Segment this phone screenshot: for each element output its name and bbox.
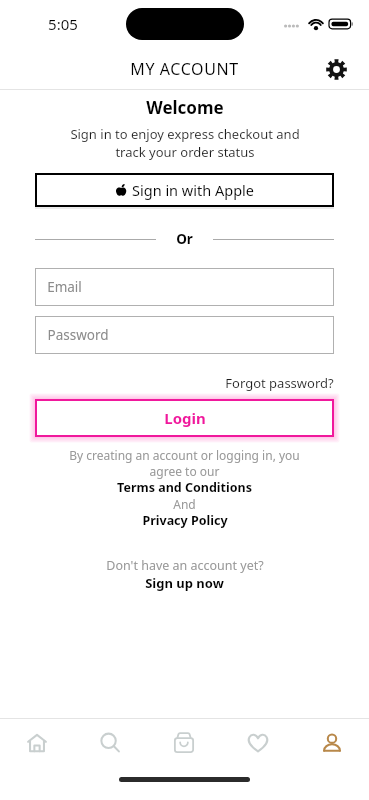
button[interactable]: Email [35,268,334,306]
button[interactable]: Search [73,719,147,767]
button[interactable]: Sign up now [145,574,224,592]
staticText: And [173,496,196,512]
staticText: Sign in with Apple [132,180,254,200]
button[interactable]: Password [35,316,334,354]
staticText: Privacy Policy [142,512,228,529]
button[interactable]: Account [295,719,369,767]
button[interactable]: Home [0,719,73,767]
button[interactable]: Terms and Conditions [117,479,252,496]
button[interactable]: Settings [321,54,351,84]
staticText: Sign in to enjoy express checkout and tr… [70,125,300,161]
button[interactable]: Wishlist [221,719,295,767]
staticText: MY ACCOUNT [130,58,239,80]
staticText: Sign up now [145,574,224,592]
staticText: Or [176,230,193,248]
staticText: Forgot password? [225,374,334,392]
staticText: Welcome [146,96,224,119]
staticText: Email [47,278,82,296]
button[interactable]: Forgot password? [225,374,334,392]
staticText: Login [164,408,206,428]
staticText: Terms and Conditions [117,479,252,496]
button[interactable]: Login [35,399,334,437]
button[interactable]: Sign in with Apple [35,173,334,207]
button[interactable]: Bag [147,719,221,767]
staticText: Don't have an account yet? [106,557,264,574]
staticText: Password [47,326,109,344]
staticText: 5:05 [48,14,78,34]
staticText: By creating an account or logging in, yo… [69,447,300,479]
button[interactable]: Privacy Policy [142,512,228,529]
